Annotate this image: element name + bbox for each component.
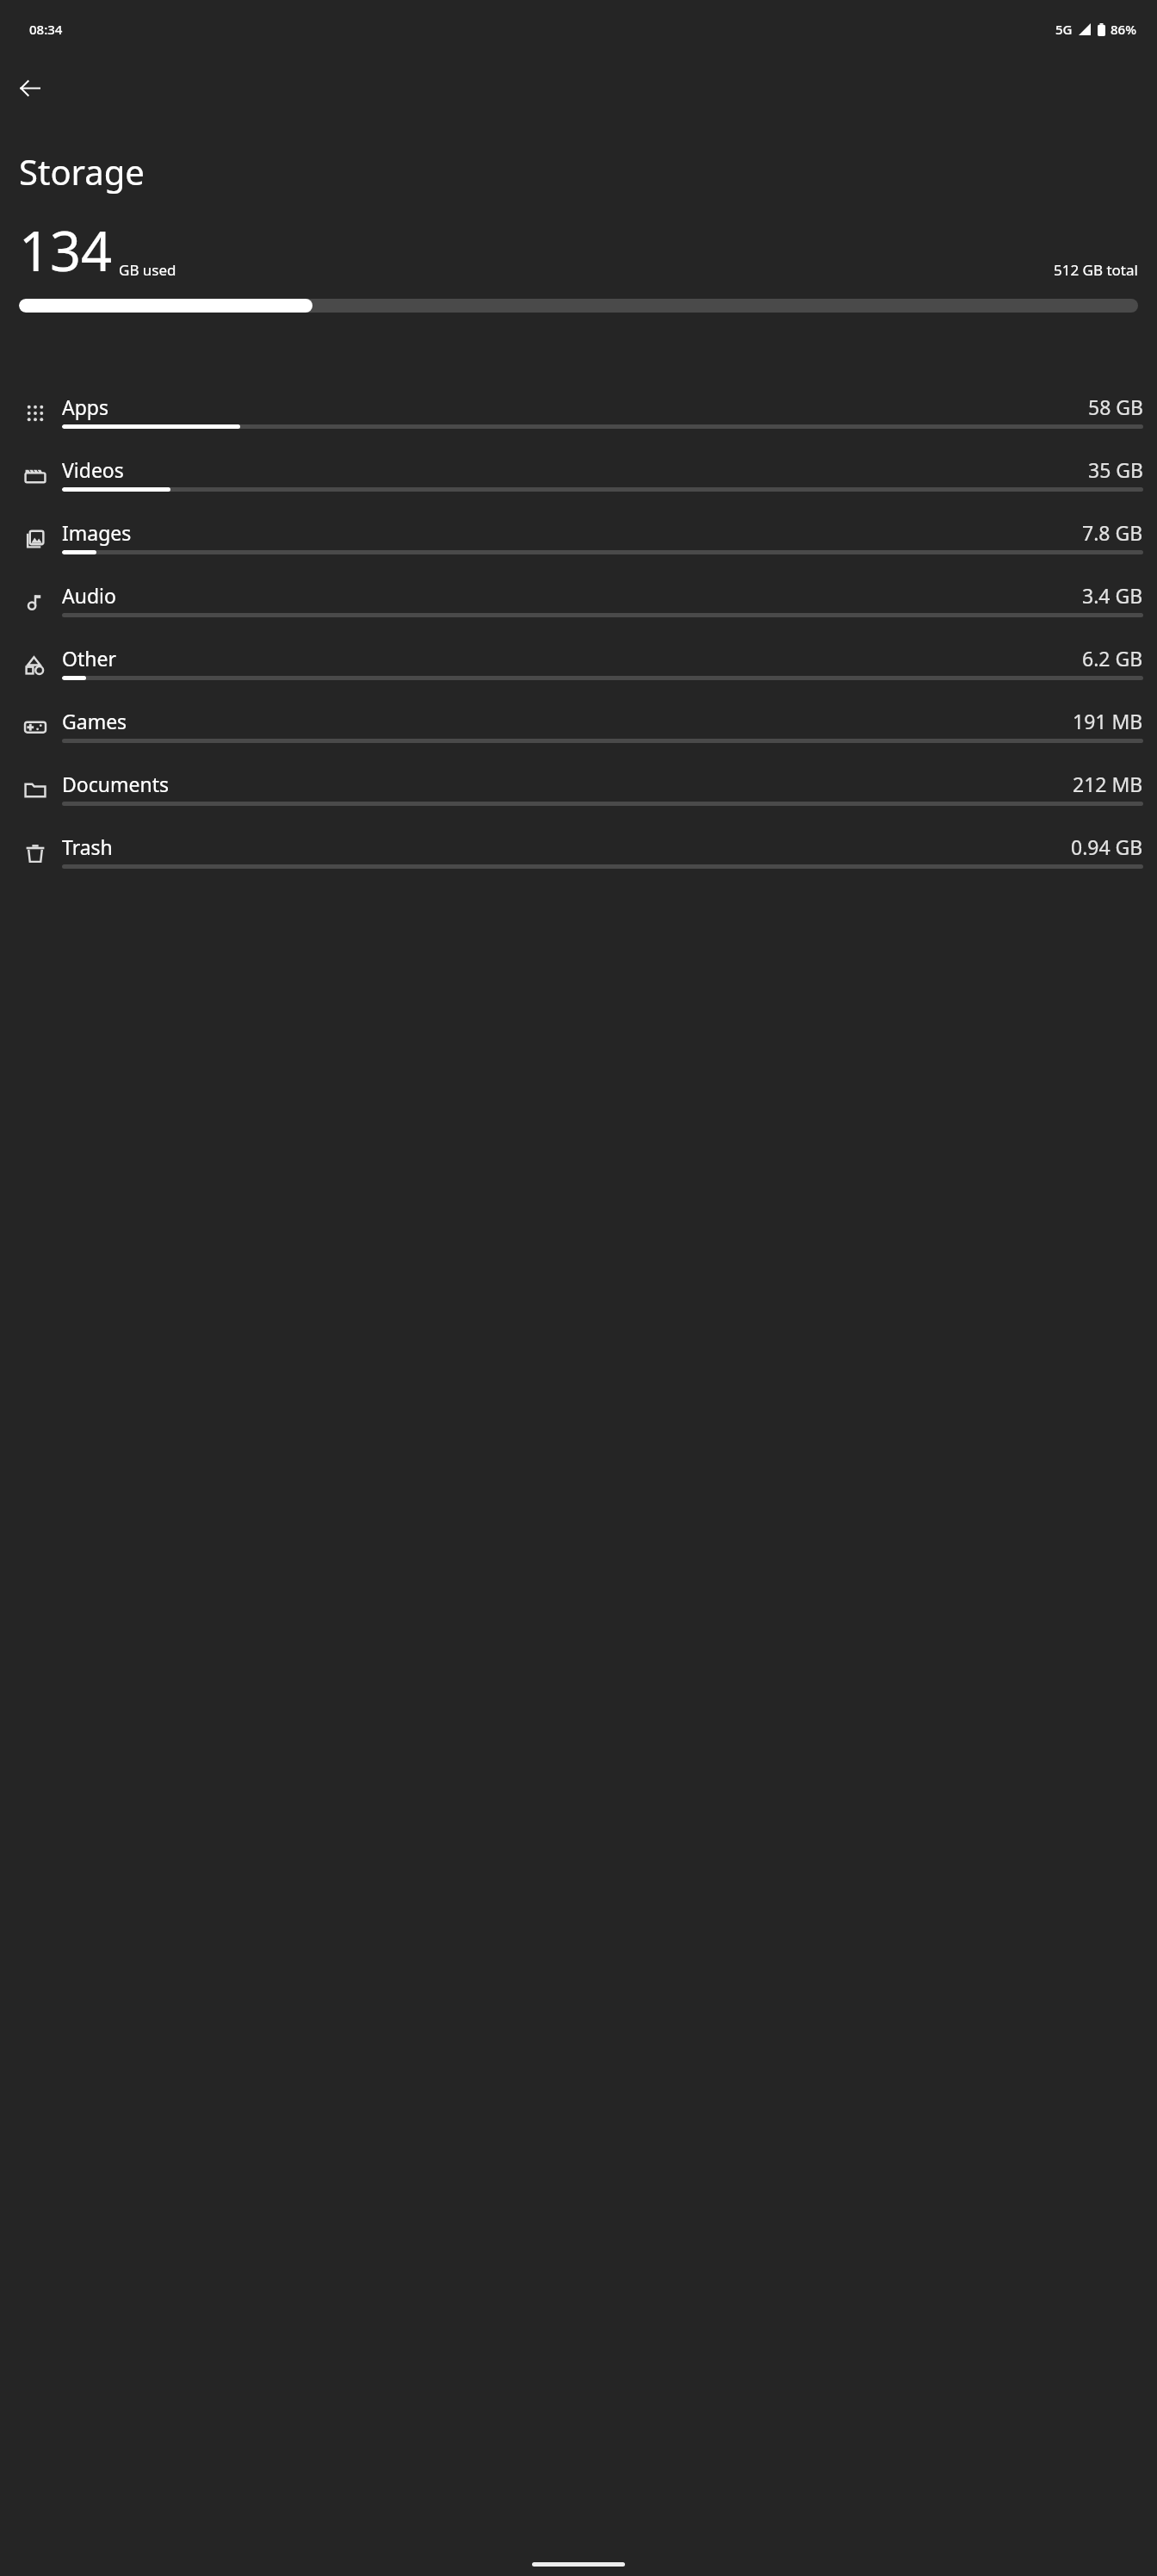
staticText: Audio — [62, 582, 116, 609]
button[interactable]: Trash — [0, 828, 1157, 891]
staticText: Videos — [62, 456, 124, 483]
staticText: 0.94 GB — [1071, 833, 1143, 860]
staticText: Apps — [62, 393, 109, 420]
staticText: 86% — [1111, 21, 1136, 38]
staticText: 212 MB — [1073, 771, 1143, 797]
staticText: 7.8 GB — [1082, 519, 1143, 546]
button[interactable]: Audio — [0, 577, 1157, 640]
staticText: GB used — [119, 260, 176, 280]
staticText: 08:34 — [29, 21, 63, 38]
staticText: 3.4 GB — [1082, 582, 1143, 609]
staticText: Other — [62, 645, 116, 672]
button[interactable]: Videos — [0, 451, 1157, 514]
staticText: 5G — [1055, 21, 1073, 38]
staticText: 512 GB total — [1054, 260, 1138, 280]
button[interactable]: Documents — [0, 765, 1157, 828]
staticText: Games — [62, 708, 127, 734]
staticText: 58 GB — [1088, 393, 1143, 420]
staticText: Trash — [62, 833, 113, 860]
staticText: 134 — [19, 214, 113, 288]
button[interactable]: Apps — [0, 388, 1157, 451]
button[interactable]: Games — [0, 703, 1157, 765]
staticText: 6.2 GB — [1082, 645, 1143, 672]
button[interactable]: Other — [0, 640, 1157, 703]
button[interactable]: Images — [0, 514, 1157, 577]
staticText: Storage — [19, 148, 145, 195]
staticText: Images — [62, 519, 132, 546]
staticText: 191 MB — [1073, 708, 1143, 734]
staticText: Documents — [62, 771, 169, 797]
staticText: 35 GB — [1088, 456, 1143, 483]
button[interactable]: Back — [9, 67, 50, 108]
